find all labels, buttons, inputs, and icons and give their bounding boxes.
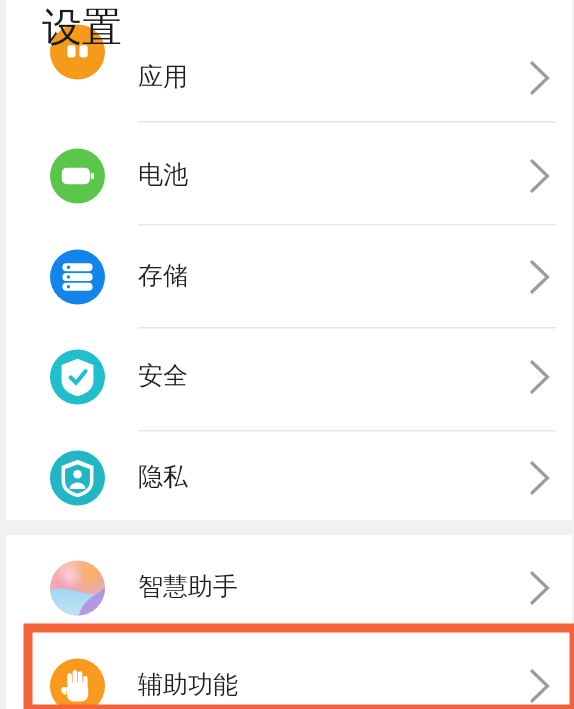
staticText: 设置 <box>42 2 122 52</box>
button[interactable]: 隐私 <box>0 430 574 520</box>
staticText: 存储 <box>138 260 188 291</box>
staticText: 辅助功能 <box>138 669 238 700</box>
button[interactable]: 智慧助手 <box>0 535 574 628</box>
button[interactable]: 电池 <box>0 121 574 224</box>
staticText: 安全 <box>138 360 188 391</box>
button[interactable]: 应用 <box>0 62 574 121</box>
staticText: 隐私 <box>138 461 188 492</box>
staticText: 电池 <box>138 159 188 190</box>
button[interactable]: 存储 <box>0 224 574 327</box>
button[interactable]: 安全 <box>0 327 574 430</box>
staticText: 智慧助手 <box>138 571 238 602</box>
button[interactable]: 辅助功能 <box>0 632 574 709</box>
staticText: 应用 <box>138 61 188 92</box>
